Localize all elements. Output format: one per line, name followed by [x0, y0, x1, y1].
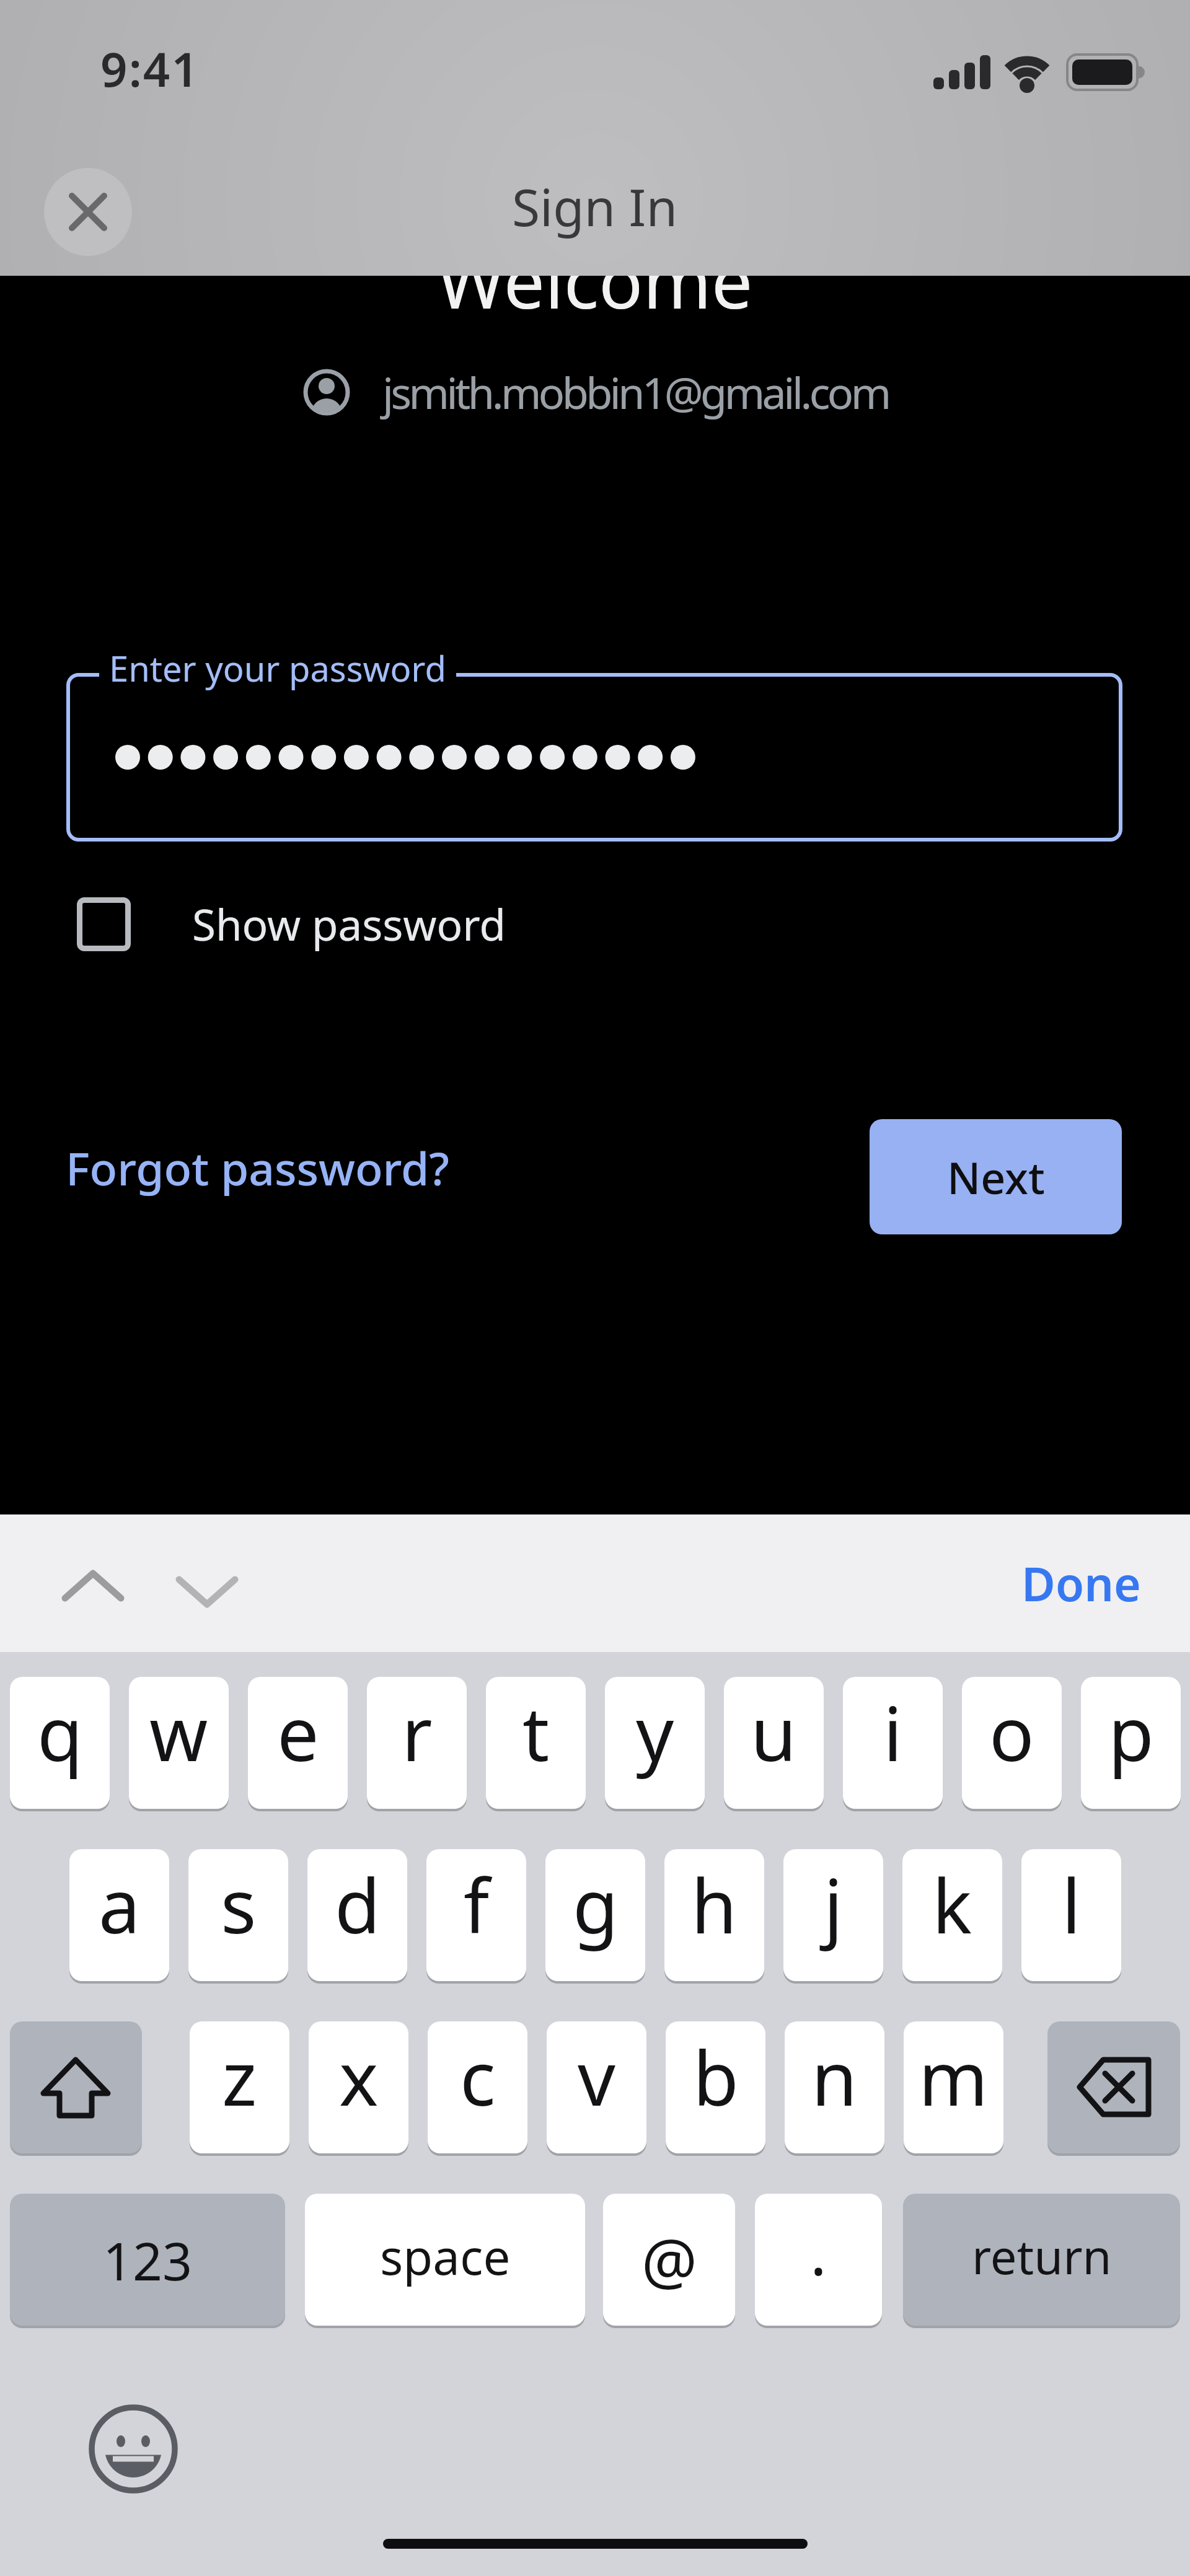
button[interactable]: f	[426, 1849, 526, 1981]
button[interactable]: r	[367, 1677, 467, 1809]
staticText: u	[751, 1682, 797, 1783]
button[interactable]: space	[305, 2194, 585, 2326]
staticText: k	[932, 1854, 972, 1955]
button[interactable]: g	[545, 1849, 645, 1981]
button[interactable]: l	[1021, 1849, 1121, 1981]
button[interactable]	[62, 1570, 248, 1607]
button[interactable]: w	[129, 1677, 229, 1809]
staticText: h	[691, 1854, 738, 1955]
staticText: x	[339, 2026, 379, 2127]
staticText: t	[522, 1682, 550, 1783]
button[interactable]: d	[307, 1849, 407, 1981]
button[interactable]	[10, 2021, 142, 2153]
button[interactable]: z	[190, 2021, 289, 2153]
staticText: l	[1062, 1854, 1081, 1955]
staticText: r	[402, 1682, 433, 1783]
button[interactable]: Done	[1021, 1552, 1141, 1615]
button[interactable]: u	[724, 1677, 824, 1809]
button[interactable]: t	[486, 1677, 586, 1809]
button[interactable]: i	[843, 1677, 943, 1809]
staticText: b	[693, 2026, 739, 2127]
staticText: Sign In	[512, 172, 678, 241]
staticText: i	[883, 1682, 902, 1783]
button[interactable]: b	[666, 2021, 765, 2153]
button[interactable]	[89, 2404, 178, 2494]
staticText: v	[578, 2026, 615, 2127]
staticText: f	[464, 1854, 490, 1955]
button[interactable]: j	[783, 1849, 883, 1981]
button[interactable]: q	[10, 1677, 110, 1809]
button[interactable]: e	[248, 1677, 348, 1809]
staticText: Enter your password	[109, 644, 446, 692]
button[interactable]: a	[69, 1849, 169, 1981]
staticText: 9:41	[100, 37, 200, 101]
button[interactable]	[44, 168, 132, 256]
staticText: space	[380, 2223, 511, 2289]
staticText: j	[824, 1854, 843, 1955]
button[interactable]: Next	[870, 1119, 1122, 1234]
staticText: Show password	[192, 895, 506, 953]
staticText: e	[277, 1682, 319, 1783]
staticText: p	[1108, 1682, 1154, 1783]
button[interactable]: h	[664, 1849, 764, 1981]
button[interactable]: m	[904, 2021, 1003, 2153]
staticText: s	[221, 1854, 257, 1955]
staticText: d	[335, 1854, 381, 1955]
button[interactable]: 123	[10, 2194, 285, 2326]
staticText: Done	[1021, 1552, 1141, 1615]
staticText: c	[460, 2026, 496, 2127]
staticText: q	[37, 1682, 83, 1783]
button[interactable]: x	[309, 2021, 408, 2153]
button[interactable]	[1047, 2021, 1180, 2153]
staticText: 123	[103, 2225, 193, 2295]
button[interactable]: s	[188, 1849, 288, 1981]
staticText: o	[989, 1682, 1034, 1783]
staticText: n	[811, 2026, 858, 2127]
button[interactable]: @	[603, 2194, 735, 2326]
button[interactable]: n	[785, 2021, 884, 2153]
staticText: m	[919, 2026, 989, 2127]
staticText: g	[573, 1854, 619, 1955]
staticText: Forgot password?	[66, 1137, 449, 1198]
button[interactable]: p	[1081, 1677, 1181, 1809]
staticText: a	[99, 1854, 141, 1955]
button[interactable]: y	[605, 1677, 705, 1809]
button[interactable]: c	[428, 2021, 527, 2153]
staticText: jsmith.mobbin1@gmail.com	[382, 363, 889, 421]
button[interactable]: return	[903, 2194, 1180, 2326]
button[interactable]: .	[755, 2194, 882, 2326]
staticText: .	[810, 2209, 827, 2293]
staticText: y	[636, 1682, 674, 1783]
staticText: Welcome	[437, 276, 753, 330]
button[interactable]: k	[902, 1849, 1002, 1981]
button[interactable]: Forgot password?	[66, 1137, 449, 1198]
staticText: return	[972, 2224, 1112, 2288]
button[interactable]: o	[962, 1677, 1062, 1809]
staticText: @	[641, 2218, 697, 2302]
staticText: z	[222, 2026, 257, 2127]
button[interactable]: Show password	[77, 895, 506, 953]
staticText: Next	[947, 1148, 1045, 1207]
button[interactable]: v	[547, 2021, 646, 2153]
staticText: w	[149, 1682, 208, 1783]
